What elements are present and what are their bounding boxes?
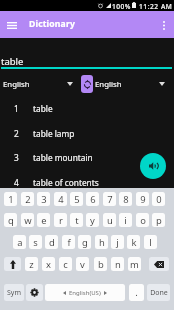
button[interactable]: . — [129, 284, 144, 301]
button[interactable]: b — [94, 257, 107, 271]
staticText: 9 — [140, 193, 146, 206]
staticText: table mountain — [33, 152, 93, 163]
button[interactable]: o — [136, 213, 149, 227]
button[interactable]: t — [70, 213, 83, 227]
button[interactable]: Shift — [4, 257, 21, 271]
button[interactable]: table — [1, 55, 24, 68]
staticText: t — [75, 214, 79, 227]
button[interactable]: k — [127, 235, 140, 249]
staticText: 1 — [8, 193, 14, 206]
staticText: v — [80, 258, 85, 271]
button[interactable]: z — [25, 257, 38, 271]
staticText: d — [49, 236, 55, 249]
button[interactable]: a — [13, 235, 26, 249]
staticText: 100% — [112, 2, 131, 11]
button[interactable]: 8 — [119, 192, 132, 206]
staticText: j — [116, 236, 119, 249]
staticText: 6 — [90, 193, 96, 206]
button[interactable]: English — [1, 75, 75, 93]
staticText: w — [24, 214, 32, 227]
staticText: k — [131, 236, 137, 249]
button[interactable]: h — [95, 235, 108, 249]
button[interactable]: q — [4, 213, 17, 227]
staticText: s — [33, 236, 38, 249]
staticText: y — [90, 214, 95, 227]
staticText: f — [67, 236, 71, 249]
staticText: l — [149, 236, 152, 249]
staticText: . — [135, 286, 138, 299]
button[interactable]: l — [144, 235, 157, 249]
button[interactable]: 4 — [54, 192, 67, 206]
staticText: table of contents — [33, 177, 99, 188]
button[interactable]: Pronounce — [140, 153, 166, 179]
button[interactable]: r — [54, 213, 67, 227]
button[interactable]: w — [21, 213, 34, 227]
staticText: 7 — [107, 193, 113, 206]
button[interactable]: x — [42, 257, 55, 271]
button[interactable]: 5 — [70, 192, 83, 206]
staticText: 2 — [25, 193, 31, 206]
staticText: English — [95, 79, 122, 90]
staticText: g — [82, 236, 88, 249]
button[interactable]: m — [128, 257, 141, 271]
button[interactable]: 1 — [0, 96, 174, 121]
button[interactable]: Done — [147, 284, 170, 301]
button[interactable]: j — [111, 235, 124, 249]
staticText: 11:22 AM — [139, 2, 173, 11]
staticText: u — [107, 214, 113, 227]
button[interactable]: Swap languages — [81, 75, 93, 93]
button[interactable]: y — [86, 213, 99, 227]
button[interactable]: i — [119, 213, 132, 227]
staticText: n — [115, 258, 121, 271]
staticText: c — [63, 258, 68, 271]
staticText: 2 — [14, 128, 19, 139]
staticText: 4 — [14, 177, 19, 188]
button[interactable]: More options — [152, 13, 174, 37]
button[interactable]: 3 — [0, 145, 174, 170]
staticText: r — [59, 214, 63, 227]
button[interactable]: e — [37, 213, 50, 227]
staticText: x — [46, 258, 51, 271]
button[interactable]: Keyboard settings — [26, 284, 43, 301]
button[interactable]: d — [45, 235, 58, 249]
staticText: q — [8, 214, 14, 227]
button[interactable]: 6 — [86, 192, 99, 206]
staticText: 5 — [74, 193, 80, 206]
button[interactable]: c — [59, 257, 72, 271]
button[interactable]: Menu — [0, 13, 24, 37]
button[interactable]: 2 — [0, 121, 174, 146]
button[interactable]: g — [78, 235, 91, 249]
staticText: i — [124, 214, 127, 227]
button[interactable]: 9 — [136, 192, 149, 206]
staticText: Sym — [7, 288, 21, 298]
staticText: English — [3, 79, 30, 90]
staticText: 1 — [14, 103, 19, 114]
button[interactable]: n — [111, 257, 124, 271]
button[interactable]: p — [152, 213, 165, 227]
button[interactable]: 1 — [4, 192, 17, 206]
button[interactable]: English — [93, 75, 167, 93]
staticText: z — [29, 258, 34, 271]
button[interactable]: Sym — [4, 284, 24, 301]
staticText: 3 — [41, 193, 47, 206]
staticText: a — [17, 236, 23, 249]
button[interactable]: 4 — [0, 170, 174, 195]
button[interactable]: 0 — [152, 192, 165, 206]
staticText: o — [140, 214, 146, 227]
staticText: table — [33, 103, 53, 114]
button[interactable]: Backspace — [149, 257, 169, 271]
button[interactable]: s — [29, 235, 42, 249]
staticText: 0 — [156, 193, 162, 206]
button[interactable]: 2 — [21, 192, 34, 206]
staticText: e — [41, 214, 47, 227]
button[interactable]: v — [76, 257, 89, 271]
staticText: 3 — [14, 152, 19, 163]
staticText: Done — [150, 288, 168, 298]
staticText: table lamp — [33, 128, 75, 139]
button[interactable]: 3 — [37, 192, 50, 206]
staticText: English(US) — [69, 289, 101, 297]
button[interactable]: 7 — [103, 192, 116, 206]
button[interactable]: u — [103, 213, 116, 227]
button[interactable]: f — [62, 235, 75, 249]
button[interactable]: Space — [45, 284, 125, 301]
